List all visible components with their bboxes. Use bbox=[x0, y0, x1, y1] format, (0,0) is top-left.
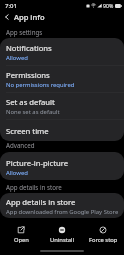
staticText: None set as default bbox=[6, 108, 60, 116]
button[interactable]: App details in store bbox=[0, 195, 124, 218]
button[interactable]: Set as default bbox=[0, 93, 124, 119]
button[interactable]: Permissions bbox=[0, 66, 124, 92]
button[interactable]: Picture-in-picture bbox=[0, 154, 124, 180]
button[interactable]: Uninstall bbox=[42, 222, 82, 244]
staticText: App info bbox=[14, 12, 45, 22]
staticText: App details in store bbox=[6, 197, 76, 207]
staticText: Open bbox=[14, 236, 29, 244]
button[interactable]: Force stop bbox=[83, 222, 123, 244]
staticText: Allowed bbox=[6, 169, 28, 177]
button[interactable]: Notifications bbox=[0, 40, 124, 65]
staticText: Screen time bbox=[6, 126, 49, 136]
staticText: Permissions bbox=[6, 70, 50, 80]
staticText: Allowed bbox=[6, 54, 28, 62]
button[interactable]: Screen time bbox=[0, 120, 124, 141]
staticText: No permissions required bbox=[6, 81, 75, 89]
button[interactable]: Open bbox=[1, 222, 41, 244]
staticText: 90% bbox=[103, 2, 114, 9]
button[interactable]: Back bbox=[0, 10, 14, 24]
staticText: Force stop bbox=[89, 236, 118, 244]
staticText: App details in store bbox=[6, 183, 62, 191]
staticText: App downloaded from Google Play Store bbox=[6, 208, 119, 216]
staticText: Uninstall bbox=[50, 236, 75, 244]
staticText: Notifications bbox=[6, 43, 52, 53]
staticText: 7:01 bbox=[5, 2, 17, 10]
staticText: Advanced bbox=[6, 141, 35, 149]
staticText: App settings bbox=[6, 28, 43, 36]
staticText: Picture-in-picture bbox=[6, 158, 69, 168]
staticText: Set as default bbox=[6, 97, 55, 107]
